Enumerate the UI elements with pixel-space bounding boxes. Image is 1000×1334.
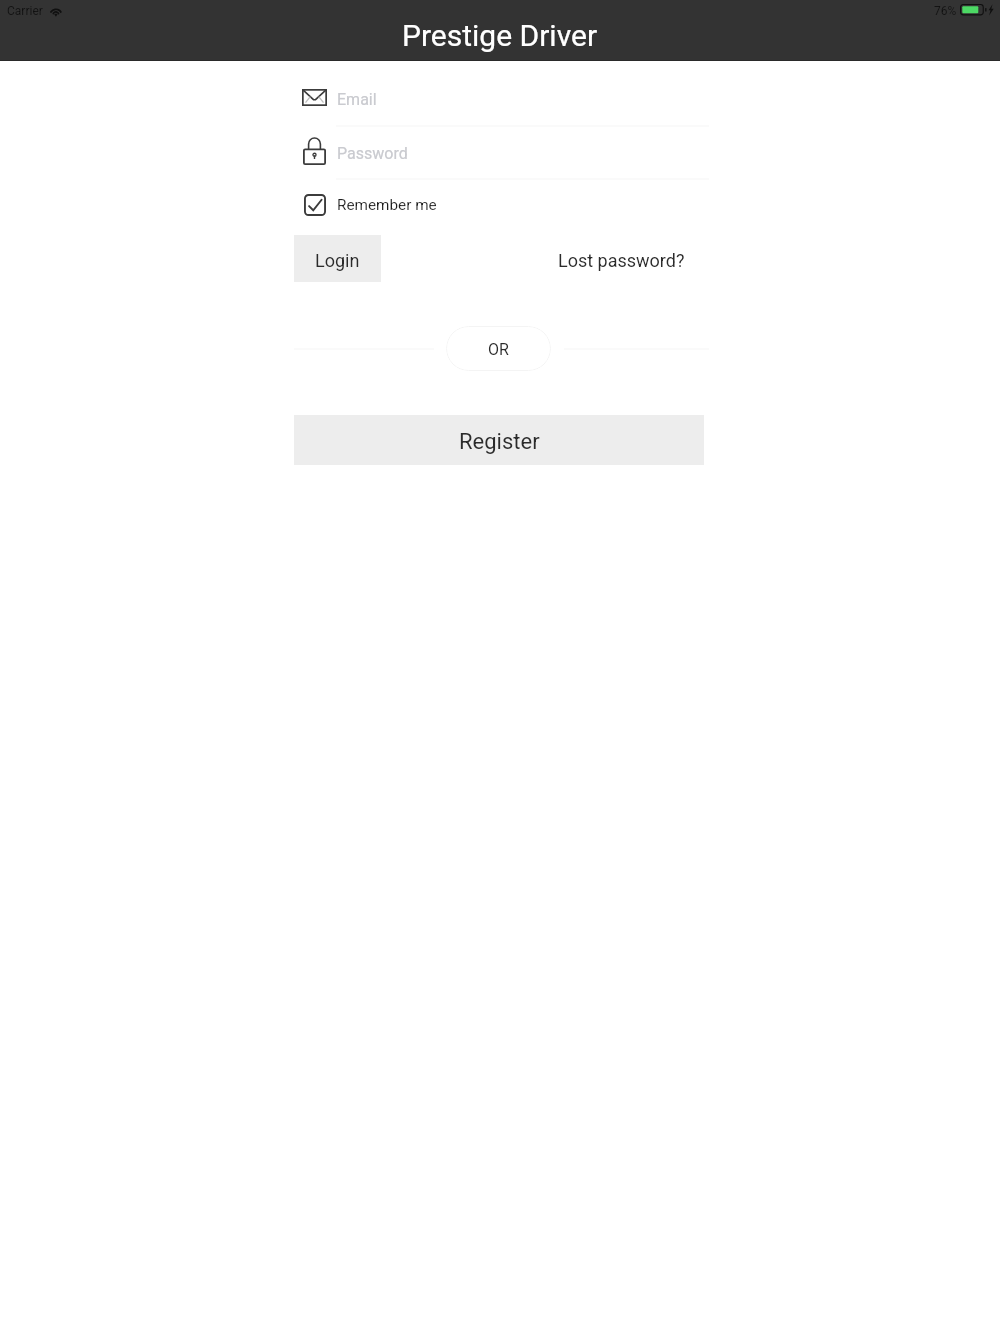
staticText: Register: [459, 429, 540, 455]
staticText: Prestige Driver: [402, 18, 598, 53]
button[interactable]: Remember me: [294, 186, 454, 223]
staticText: Password: [337, 144, 408, 163]
staticText: Carrier: [7, 4, 43, 18]
staticText: Lost password?: [558, 250, 685, 271]
staticText: Email: [337, 90, 377, 109]
staticText: Remember me: [337, 196, 437, 214]
button[interactable]: Lost password?: [552, 243, 691, 277]
other: Password: [303, 136, 326, 165]
button[interactable]: OR: [446, 326, 551, 371]
button[interactable]: Login: [294, 235, 381, 282]
other: Email: [302, 89, 327, 106]
staticText: OR: [488, 340, 509, 359]
button[interactable]: Register: [294, 415, 704, 465]
other: Wi-Fi signal: [49, 4, 64, 16]
staticText: Login: [315, 250, 360, 271]
staticText: 76%: [934, 4, 957, 18]
button[interactable]: Password: [294, 126, 709, 179]
button[interactable]: Email: [294, 71, 709, 125]
other: Battery 76 percent, charging: [960, 4, 996, 16]
